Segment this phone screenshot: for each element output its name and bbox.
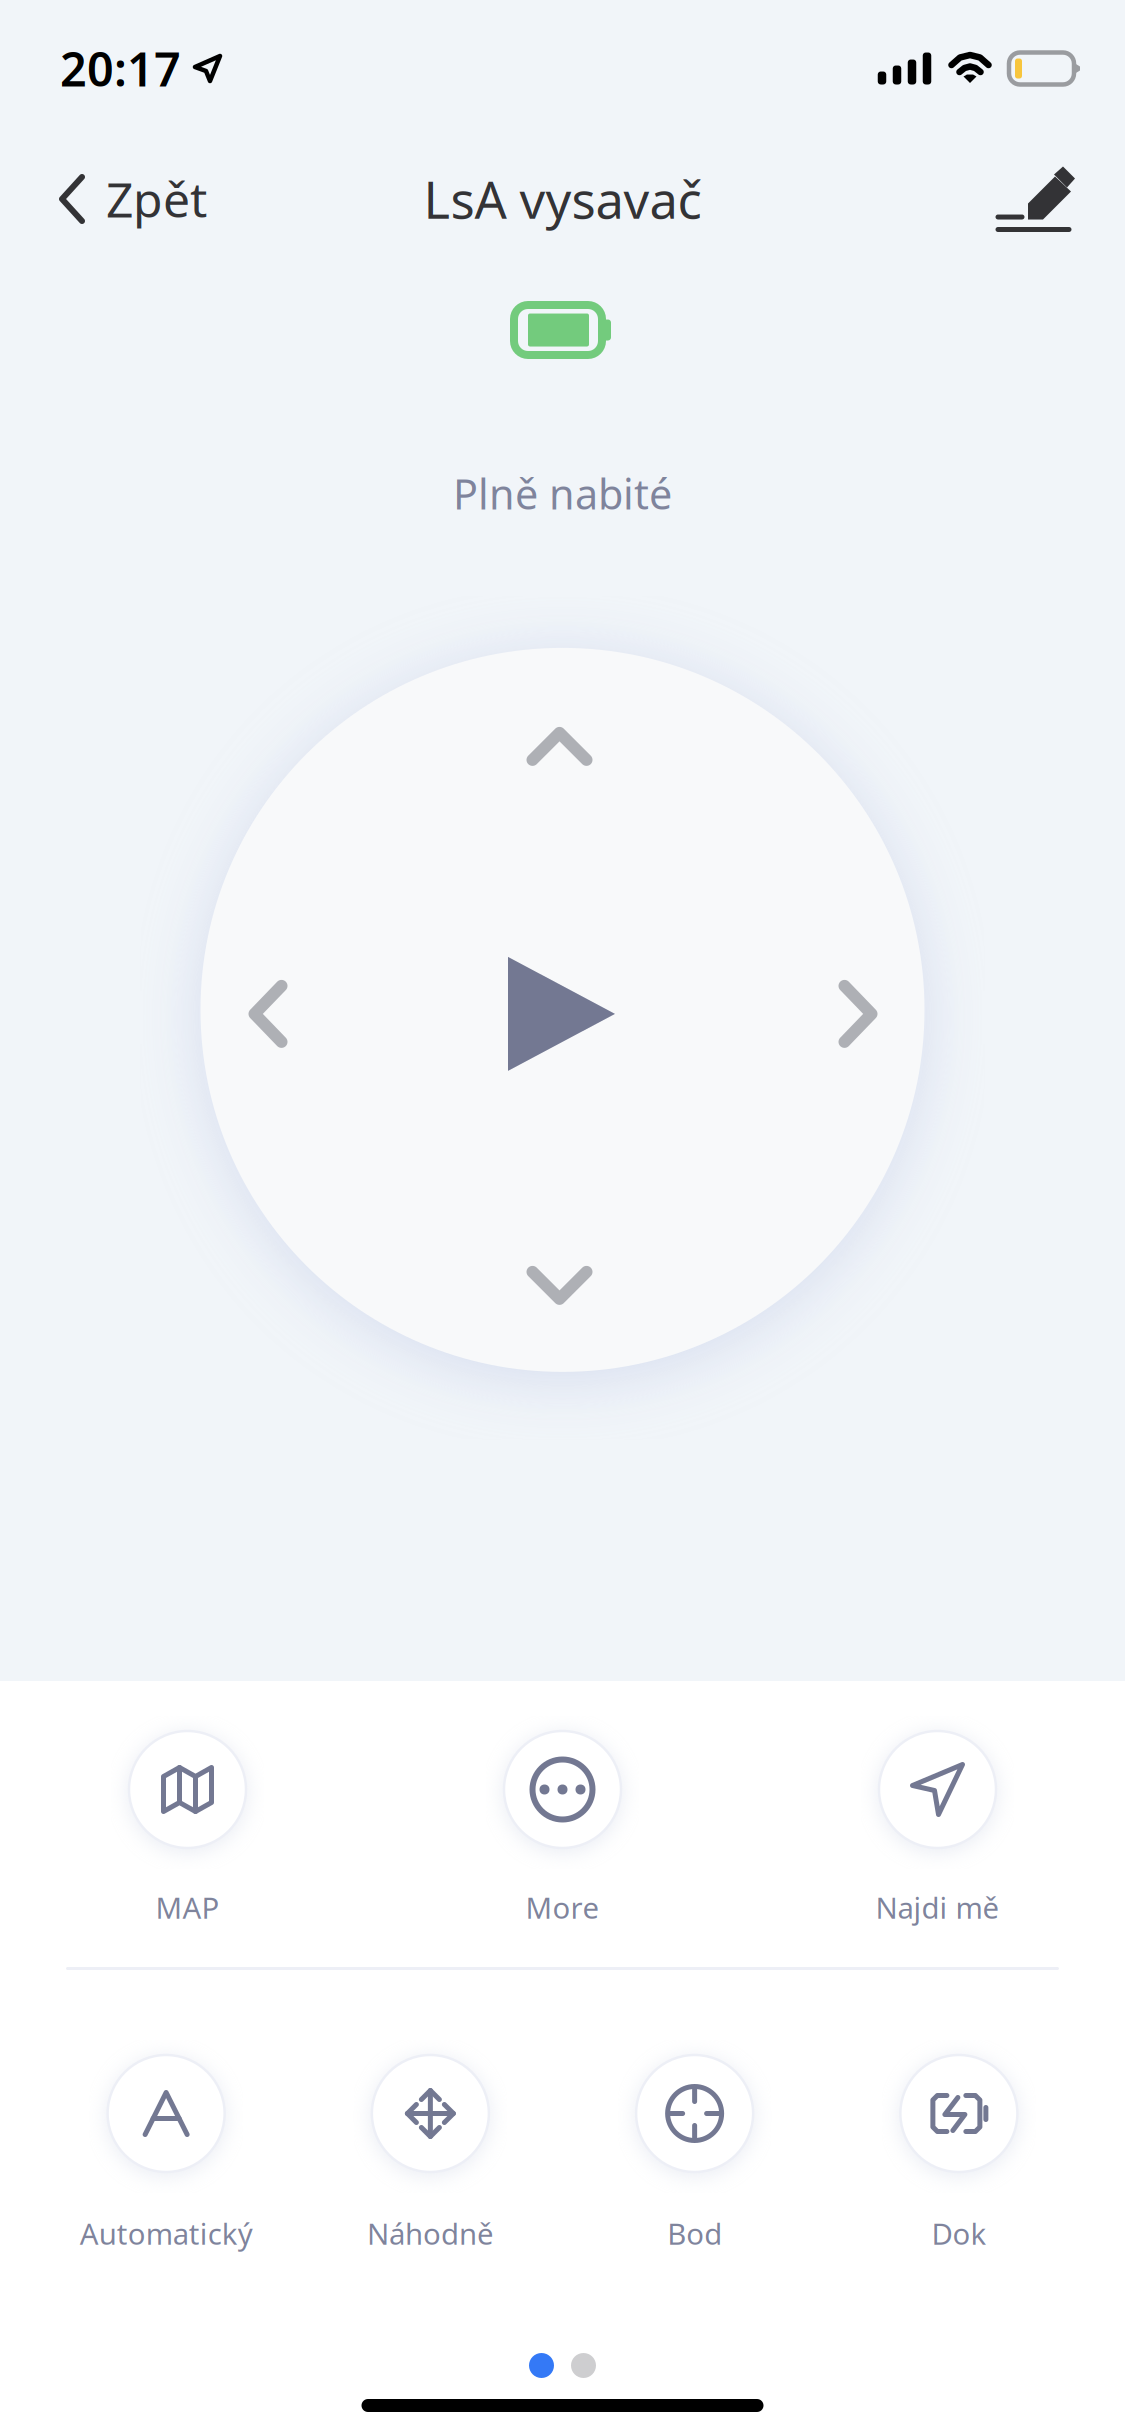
button[interactable]: Left <box>197 940 337 1090</box>
button[interactable]: Zpět <box>0 144 237 254</box>
button[interactable]: More <box>375 1731 750 1928</box>
staticText: LsA vysavač <box>423 165 701 233</box>
button[interactable]: Edit <box>966 144 1125 254</box>
button[interactable]: Forward <box>484 676 634 816</box>
button[interactable]: Dok <box>827 2055 1091 2254</box>
staticText: Najdi mě <box>875 1888 999 1927</box>
staticText: More <box>525 1888 599 1927</box>
staticText: Zpět <box>106 167 207 231</box>
staticText: Automatický <box>80 2214 253 2253</box>
button[interactable]: Náhodně <box>298 2055 562 2254</box>
staticText: Dok <box>931 2214 986 2253</box>
staticText: Plně nabité <box>453 466 672 521</box>
staticText: MAP <box>155 1888 219 1927</box>
staticText: Náhodně <box>367 2214 494 2253</box>
button[interactable]: Back <box>484 1215 634 1355</box>
staticText: Bod <box>667 2214 722 2253</box>
button[interactable]: Bod <box>562 2055 827 2254</box>
button[interactable]: Right <box>787 940 927 1090</box>
button[interactable]: Automatický <box>34 2055 298 2254</box>
button[interactable]: Najdi mě <box>750 1731 1125 1928</box>
staticText: 20:17 <box>60 37 181 99</box>
button[interactable]: MAP <box>0 1731 375 1928</box>
button[interactable]: Start cleaning <box>466 919 656 1109</box>
